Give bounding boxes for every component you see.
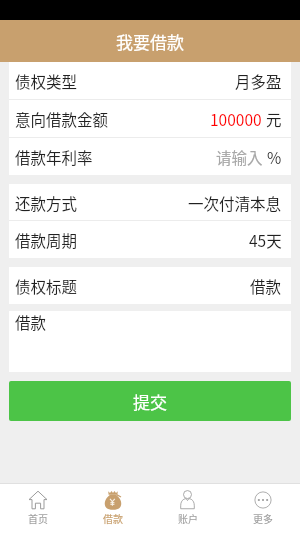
- staticText: 借款: [103, 511, 123, 525]
- staticText: 一次付清本息: [188, 192, 282, 214]
- button[interactable]: 借款: [9, 311, 291, 372]
- button[interactable]: Account: [150, 484, 225, 533]
- staticText: 更多: [253, 511, 273, 525]
- staticText: 元: [266, 108, 282, 130]
- staticText: 首页: [28, 511, 48, 525]
- button[interactable]: Home: [0, 484, 75, 533]
- other: More: [254, 491, 272, 509]
- button[interactable]: 借款年利率: [9, 138, 291, 175]
- other: Home: [28, 490, 48, 510]
- staticText: 债权类型: [15, 70, 78, 92]
- button[interactable]: 借款周期: [9, 221, 291, 258]
- button[interactable]: 意向借款金额: [9, 100, 291, 137]
- staticText: 账户: [178, 511, 198, 525]
- staticText: 意向借款金额: [15, 108, 109, 130]
- button[interactable]: More: [225, 484, 300, 533]
- staticText: 债权标题: [15, 275, 78, 297]
- button[interactable]: 债权类型: [9, 62, 291, 99]
- staticText: 借款年利率: [15, 146, 93, 168]
- staticText: 还款方式: [15, 192, 78, 214]
- button[interactable]: 提交: [9, 381, 291, 421]
- staticText: 45天: [249, 229, 282, 251]
- staticText: 借款: [15, 311, 47, 333]
- staticText: %: [267, 146, 282, 168]
- staticText: 月多盈: [235, 70, 282, 92]
- staticText: 我要借款: [116, 29, 184, 54]
- button[interactable]: 还款方式: [9, 184, 291, 220]
- staticText: 提交: [133, 389, 167, 414]
- staticText: 请输入: [216, 146, 263, 168]
- other: Borrow: [103, 489, 123, 510]
- staticText: 借款: [250, 275, 282, 297]
- other: Account: [179, 489, 196, 510]
- staticText: 100000: [210, 108, 262, 130]
- button[interactable]: Borrow: [75, 484, 150, 533]
- button[interactable]: 债权标题: [9, 267, 291, 304]
- staticText: 借款周期: [15, 229, 78, 251]
